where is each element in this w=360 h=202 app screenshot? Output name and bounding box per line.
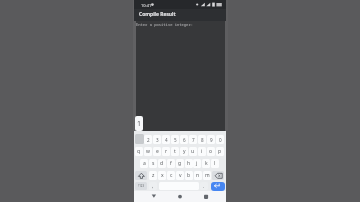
staticText: n: [196, 172, 200, 179]
button[interactable]: c: [167, 171, 175, 180]
button[interactable]: 2: [144, 135, 152, 144]
button[interactable]: [149, 192, 159, 202]
button[interactable]: 4: [162, 135, 170, 144]
staticText: d: [160, 160, 164, 167]
staticText: x: [161, 172, 164, 179]
button[interactable]: z: [149, 171, 157, 180]
staticText: q: [137, 148, 141, 155]
staticText: c: [170, 172, 173, 179]
button[interactable]: r: [162, 147, 170, 156]
staticText: j: [196, 160, 198, 167]
button[interactable]: 0: [216, 135, 224, 144]
staticText: ?123: [138, 184, 145, 188]
button[interactable]: u: [189, 147, 197, 156]
button[interactable]: 5: [171, 135, 179, 144]
staticText: v: [179, 172, 182, 179]
button[interactable]: k: [202, 159, 210, 168]
staticText: 0: [219, 137, 222, 143]
button[interactable]: ,: [149, 182, 157, 190]
staticText: m: [205, 172, 210, 179]
staticText: 8: [201, 137, 204, 143]
staticText: g: [178, 160, 182, 167]
staticText: y: [183, 148, 186, 155]
staticText: ,: [152, 183, 154, 189]
staticText: 9: [210, 137, 213, 143]
staticText: k: [205, 160, 208, 167]
staticText: w: [146, 148, 150, 155]
staticText: 10:41: [141, 3, 152, 8]
button[interactable]: [175, 192, 185, 202]
button[interactable]: [135, 134, 144, 144]
staticText: 5: [174, 137, 177, 143]
button[interactable]: j: [193, 159, 201, 168]
button[interactable]: .: [200, 182, 208, 190]
staticText: h: [187, 160, 191, 167]
button[interactable]: s: [149, 159, 157, 168]
button[interactable]: a: [140, 159, 148, 168]
button[interactable]: [201, 192, 211, 202]
button[interactable]: n: [194, 171, 202, 180]
button[interactable]: 9: [207, 135, 215, 144]
button[interactable]: 7: [189, 135, 197, 144]
staticText: p: [218, 148, 222, 155]
button[interactable]: [212, 171, 224, 180]
button[interactable]: m: [203, 171, 211, 180]
staticText: r: [165, 148, 168, 155]
button[interactable]: [135, 171, 147, 180]
staticText: t: [174, 148, 176, 155]
staticText: 3: [156, 137, 159, 143]
staticText: u: [191, 148, 195, 155]
button[interactable]: l: [211, 159, 219, 168]
button[interactable]: 3: [153, 135, 161, 144]
staticText: 4: [165, 137, 168, 143]
staticText: e: [156, 148, 159, 155]
button[interactable]: i: [198, 147, 206, 156]
staticText: i: [201, 148, 203, 155]
button[interactable]: 8: [198, 135, 206, 144]
staticText: 2: [147, 137, 150, 143]
button[interactable]: q: [135, 147, 143, 156]
button[interactable]: d: [158, 159, 166, 168]
button[interactable]: [134, 9, 226, 21]
staticText: f: [170, 160, 172, 167]
button[interactable]: ?123: [135, 182, 147, 190]
button[interactable]: f: [167, 159, 175, 168]
button[interactable]: t: [171, 147, 179, 156]
button[interactable]: 6: [180, 135, 188, 144]
button[interactable]: p: [216, 147, 224, 156]
staticText: z: [152, 172, 155, 179]
staticText: b: [187, 172, 191, 179]
button[interactable]: v: [176, 171, 184, 180]
staticText: 6: [183, 137, 186, 143]
staticText: o: [209, 148, 213, 155]
button[interactable]: g: [176, 159, 184, 168]
button[interactable]: e: [153, 147, 161, 156]
button[interactable]: x: [158, 171, 166, 180]
staticText: l: [214, 160, 216, 167]
button[interactable]: b: [185, 171, 193, 180]
staticText: s: [152, 160, 155, 167]
staticText: Enter a positive integer:: [136, 22, 193, 27]
staticText: Compile Result: [139, 11, 176, 18]
button[interactable]: [211, 182, 225, 191]
staticText: 1: [137, 119, 142, 129]
button[interactable]: h: [185, 159, 193, 168]
staticText: .: [203, 183, 205, 189]
button[interactable]: y: [180, 147, 188, 156]
button[interactable]: w: [144, 147, 152, 156]
staticText: 7: [192, 137, 195, 143]
staticText: a: [143, 160, 146, 167]
button[interactable]: o: [207, 147, 215, 156]
